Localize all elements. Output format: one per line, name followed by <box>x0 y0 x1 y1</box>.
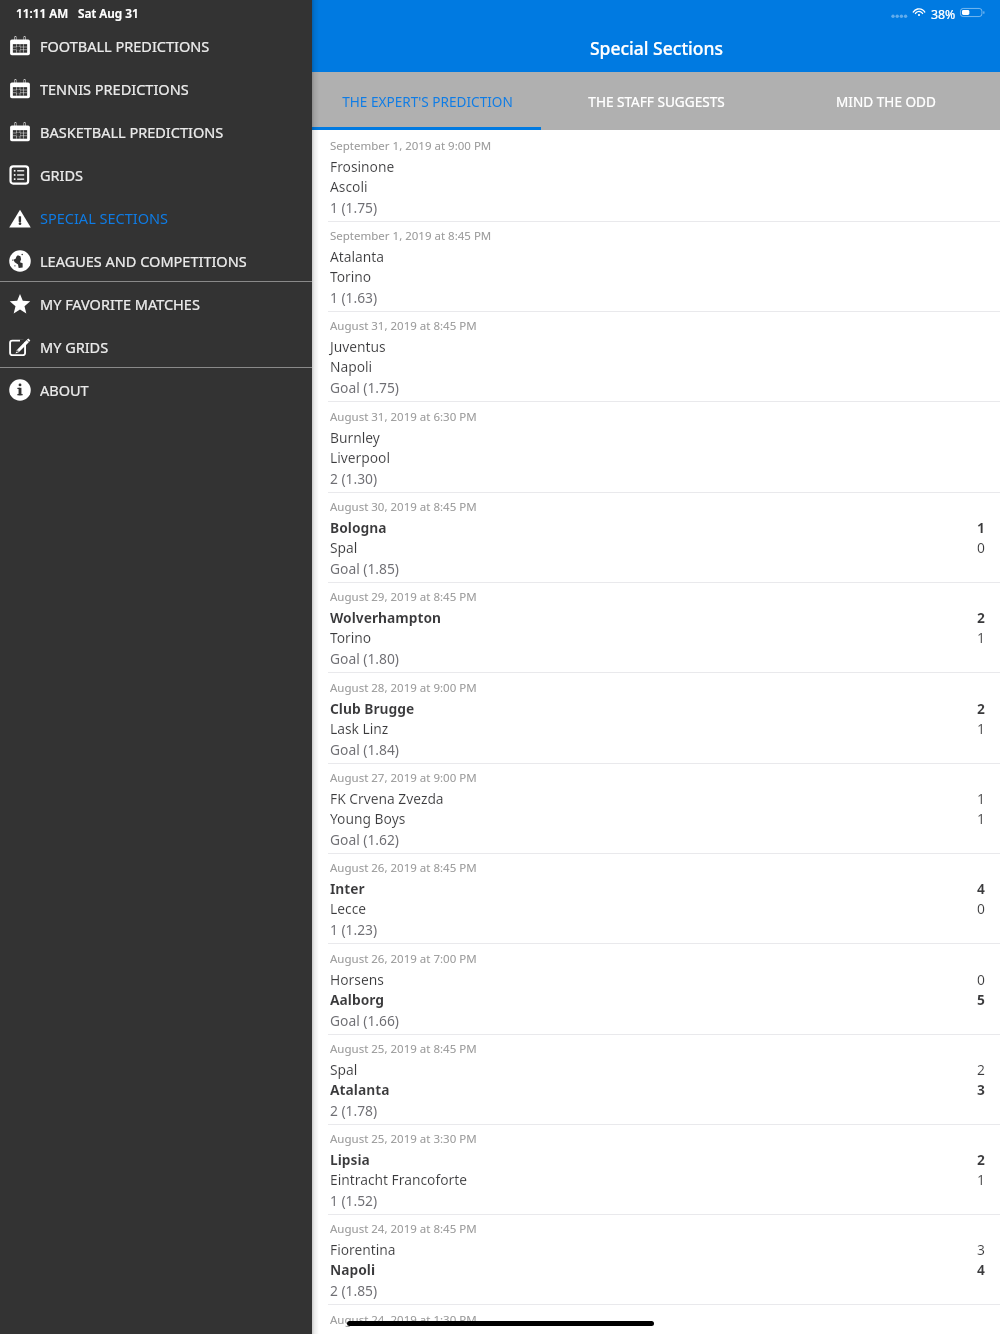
button[interactable]: August 26, 2019 at 8:45 PM <box>312 853 1000 944</box>
staticText: FOOTBALL PREDICTIONS <box>40 36 210 56</box>
staticText: Fiorentina <box>330 1240 396 1259</box>
button[interactable]: August 25, 2019 at 3:30 PM <box>312 1124 1000 1215</box>
staticText: Bologna <box>330 518 387 537</box>
button[interactable]: August 31, 2019 at 6:30 PM <box>312 402 1000 493</box>
staticText: 1 (1.52) <box>330 1191 378 1210</box>
staticText: Young Boys <box>330 809 406 828</box>
staticText: August 25, 2019 at 8:45 PM <box>330 1041 477 1057</box>
staticText: 3 <box>977 1240 985 1259</box>
staticText: August 25, 2019 at 3:30 PM <box>330 1131 477 1147</box>
staticText: Club Brugge <box>330 699 415 718</box>
staticText: 1 (1.75) <box>330 198 378 217</box>
staticText: Atalanta <box>330 247 385 266</box>
staticText: 2 <box>977 699 985 718</box>
button[interactable]: LEAGUES AND COMPETITIONS <box>0 239 312 282</box>
button[interactable]: MY GRIDS <box>0 325 312 368</box>
staticText: August 30, 2019 at 8:45 PM <box>330 499 477 515</box>
staticText: Horsens <box>330 970 384 989</box>
staticText: Liverpool <box>330 448 391 467</box>
staticText: August 31, 2019 at 6:30 PM <box>330 409 477 425</box>
staticText: Inter <box>330 879 365 898</box>
staticText: Spal <box>330 538 358 557</box>
button[interactable]: SPECIAL SECTIONS <box>0 196 312 239</box>
staticText: 4 <box>977 1260 985 1279</box>
staticText: Goal (1.80) <box>330 649 399 668</box>
staticText: Lipsia <box>330 1150 370 1169</box>
staticText: 2 <box>977 1150 985 1169</box>
staticText: 2 <box>977 608 985 627</box>
staticText: GRIDS <box>40 165 84 185</box>
staticText: 0 <box>977 970 985 989</box>
staticText: Burnley <box>330 428 380 447</box>
staticText: 1 <box>977 1170 985 1189</box>
staticText: LEAGUES AND COMPETITIONS <box>40 251 247 271</box>
staticText: September 1, 2019 at 8:45 PM <box>330 228 492 244</box>
button[interactable]: GRIDS <box>0 153 312 196</box>
staticText: SPECIAL SECTIONS <box>40 208 168 228</box>
button[interactable]: September 1, 2019 at 8:45 PM <box>312 221 1000 312</box>
button[interactable]: August 24, 2019 at 1:30 PM <box>312 1305 1000 1334</box>
staticText: Special Sections <box>590 36 723 60</box>
staticText: MY GRIDS <box>40 337 109 357</box>
staticText: MY FAVORITE MATCHES <box>40 294 200 314</box>
staticText: Lask Linz <box>330 719 389 738</box>
staticText: 1 <box>977 628 985 647</box>
button[interactable]: August 28, 2019 at 9:00 PM <box>312 673 1000 764</box>
staticText: Sat Aug 31 <box>78 5 139 21</box>
button[interactable]: August 30, 2019 at 8:45 PM <box>312 492 1000 583</box>
staticText: Goal (1.85) <box>330 559 399 578</box>
button[interactable]: FOOTBALL PREDICTIONS <box>0 24 312 67</box>
staticText: 1 <box>977 518 985 537</box>
button[interactable]: August 25, 2019 at 8:45 PM <box>312 1034 1000 1125</box>
staticText: August 24, 2019 at 8:45 PM <box>330 1221 477 1237</box>
button[interactable]: August 24, 2019 at 8:45 PM <box>312 1214 1000 1305</box>
button[interactable]: ABOUT <box>0 368 312 411</box>
staticText: Napoli <box>330 357 373 376</box>
staticText: Torino <box>330 267 372 286</box>
staticText: 0 <box>977 899 985 918</box>
staticText: 2 (1.85) <box>330 1281 378 1300</box>
staticText: ABOUT <box>40 380 89 400</box>
staticText: 5 <box>977 990 985 1009</box>
staticText: Goal (1.84) <box>330 740 399 759</box>
button[interactable]: MIND THE ODD <box>771 72 1000 130</box>
staticText: 2 (1.30) <box>330 469 378 488</box>
staticText: Frosinone <box>330 157 395 176</box>
staticText: 1 (1.63) <box>330 288 378 307</box>
staticText: Ascoli <box>330 177 368 196</box>
button[interactable]: BASKETBALL PREDICTIONS <box>0 110 312 153</box>
staticText: Goal (1.62) <box>330 830 399 849</box>
button[interactable]: THE STAFF SUGGESTS <box>542 72 771 130</box>
staticText: Torino <box>330 628 372 647</box>
button[interactable]: August 26, 2019 at 7:00 PM <box>312 944 1000 1035</box>
button[interactable]: August 31, 2019 at 8:45 PM <box>312 311 1000 402</box>
button[interactable]: TENNIS PREDICTIONS <box>0 67 312 110</box>
staticText: Goal (1.66) <box>330 1011 399 1030</box>
staticText: THE STAFF SUGGESTS <box>588 92 725 111</box>
staticText: August 28, 2019 at 9:00 PM <box>330 680 477 696</box>
staticText: August 26, 2019 at 7:00 PM <box>330 951 477 967</box>
staticText: Atalanta <box>330 1080 390 1099</box>
button[interactable]: August 27, 2019 at 9:00 PM <box>312 763 1000 854</box>
staticText: September 1, 2019 at 9:00 PM <box>330 138 492 154</box>
staticText: 1 <box>977 719 985 738</box>
staticText: TENNIS PREDICTIONS <box>40 79 189 99</box>
staticText: 1 <box>977 789 985 808</box>
staticText: 2 (1.78) <box>330 1101 378 1120</box>
staticText: Juventus <box>330 337 386 356</box>
staticText: Lecce <box>330 899 367 918</box>
staticText: August 29, 2019 at 8:45 PM <box>330 589 477 605</box>
button[interactable]: September 1, 2019 at 9:00 PM <box>312 131 1000 222</box>
staticText: 2 <box>977 1060 985 1079</box>
button[interactable]: August 29, 2019 at 8:45 PM <box>312 582 1000 673</box>
staticText: FK Crvena Zvezda <box>330 789 444 808</box>
staticText: August 27, 2019 at 9:00 PM <box>330 770 477 786</box>
button[interactable]: THE EXPERT'S PREDICTION <box>312 72 542 130</box>
staticText: 1 <box>977 809 985 828</box>
staticText: 3 <box>977 1080 985 1099</box>
button[interactable]: MY FAVORITE MATCHES <box>0 282 312 325</box>
staticText: Spal <box>330 1060 358 1079</box>
staticText: August 24, 2019 at 1:30 PM <box>330 1312 477 1328</box>
